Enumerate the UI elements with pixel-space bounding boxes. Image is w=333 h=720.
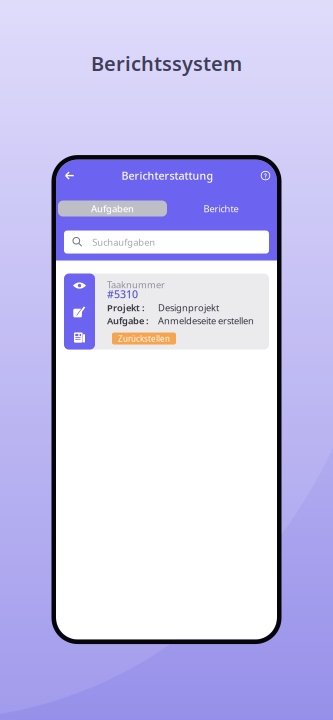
button[interactable]: View task — [64, 274, 94, 298]
staticText: Projekt : — [107, 301, 145, 314]
button[interactable]: Edit task — [64, 300, 94, 324]
staticText: Anmeldeseite erstellen — [158, 314, 254, 327]
staticText: Zurückstellen — [118, 333, 170, 344]
staticText: Aufgaben — [91, 202, 134, 215]
staticText: Taaknummer — [107, 278, 165, 291]
staticText: Aufgabe : — [107, 314, 149, 327]
button[interactable]: Help — [255, 166, 276, 186]
staticText: Berichte — [203, 202, 238, 215]
staticText: Designprojekt — [158, 301, 219, 314]
staticText: #5310 — [107, 287, 138, 301]
staticText: Suchaufgaben — [92, 236, 155, 248]
button[interactable]: Save task — [64, 326, 94, 350]
staticText: Berichterstattung — [121, 168, 213, 183]
button[interactable]: Back — [59, 166, 80, 186]
staticText: Berichtssystem — [91, 50, 242, 77]
button[interactable]: Zurückstellen — [107, 333, 176, 345]
button[interactable]: Berichte — [167, 201, 275, 217]
button[interactable]: Aufgaben — [58, 201, 167, 217]
